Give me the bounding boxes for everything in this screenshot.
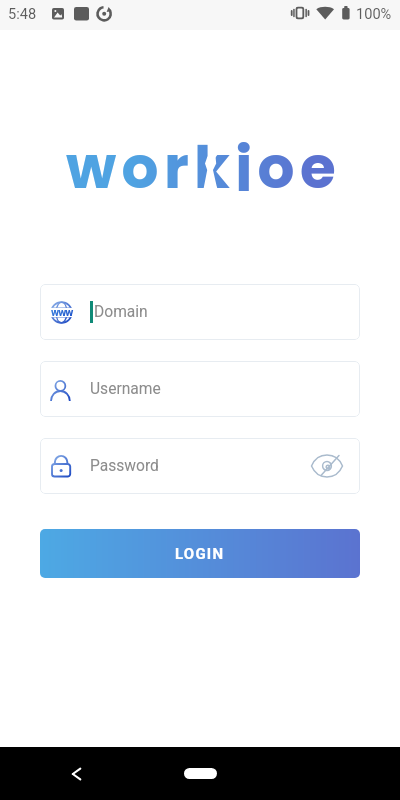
staticText: www bbox=[51, 306, 73, 319]
button[interactable]: Home bbox=[184, 768, 217, 779]
button[interactable]: Show password bbox=[310, 449, 344, 483]
button[interactable]: Username bbox=[40, 361, 360, 417]
staticText: 100% bbox=[356, 5, 392, 22]
staticText: Password bbox=[90, 457, 159, 475]
staticText: LOGIN bbox=[175, 545, 225, 563]
staticText: workjoe bbox=[66, 127, 341, 191]
button[interactable]: www bbox=[40, 284, 360, 340]
button[interactable]: Back bbox=[59, 756, 95, 792]
staticText: 5:48 bbox=[8, 5, 37, 22]
staticText: Username bbox=[90, 380, 161, 398]
button[interactable]: LOGIN bbox=[40, 529, 360, 578]
staticText: Domain bbox=[94, 303, 148, 321]
button[interactable]: Password bbox=[40, 438, 360, 494]
